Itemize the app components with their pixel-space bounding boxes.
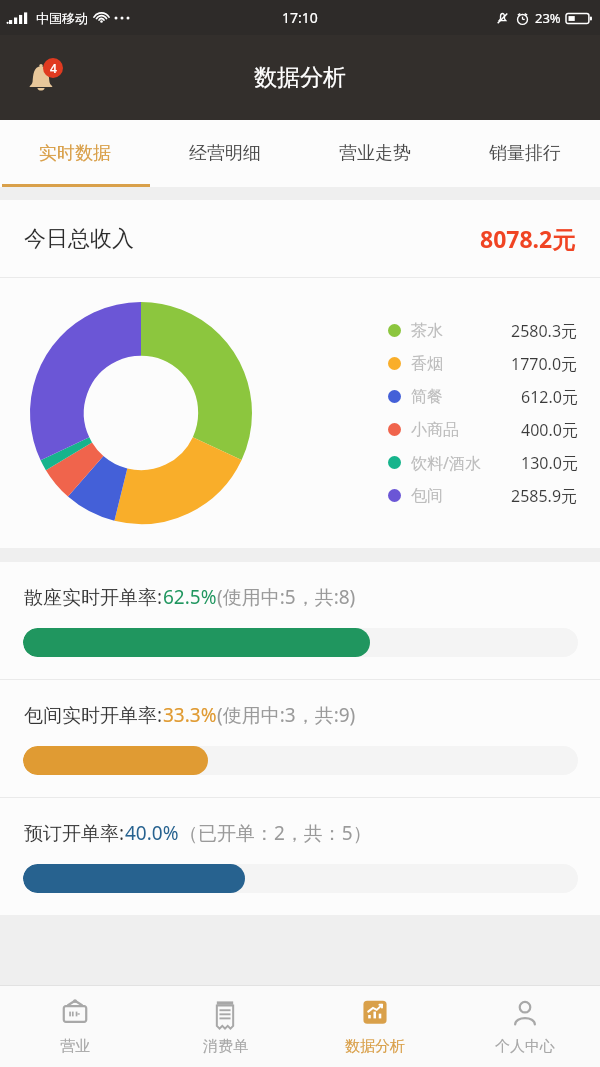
staticText: 饮料/酒水 (411, 452, 481, 474)
button[interactable]: 实时数据 (0, 120, 150, 187)
staticText: 包间实时开单率: (24, 702, 163, 728)
staticText: 40.0% (125, 820, 179, 846)
staticText: 个人中心 (495, 1037, 555, 1056)
staticText: (使用中:3，共:9) (217, 702, 356, 728)
staticText: 预订开单率: (24, 820, 125, 846)
staticText: 今日总收入 (24, 225, 134, 253)
button[interactable]: 预订开单率: (0, 798, 600, 915)
button[interactable]: 营业走势 (300, 120, 450, 187)
staticText: 小商品 (411, 420, 459, 440)
staticText: 612.0元 (521, 386, 578, 408)
staticText: 营业走势 (339, 142, 411, 165)
staticText: 4 (50, 60, 57, 76)
staticText: 130.0元 (521, 452, 578, 474)
staticText: 消费单 (203, 1037, 248, 1056)
staticText: 2585.9元 (511, 485, 578, 507)
button[interactable]: 个人中心 (450, 986, 600, 1067)
button[interactable]: 消费单 (150, 986, 300, 1067)
staticText: 数据分析 (254, 63, 346, 92)
button[interactable]: 通知 (18, 55, 64, 101)
staticText: 17:10 (282, 8, 318, 27)
button[interactable]: 营业 (0, 986, 150, 1067)
staticText: 数据分析 (345, 1037, 405, 1056)
staticText: 简餐 (411, 387, 443, 407)
staticText: 2580.3元 (511, 320, 578, 342)
staticText: 销量排行 (489, 142, 561, 165)
staticText: (使用中:5，共:8) (217, 584, 356, 610)
button[interactable]: 散座实时开单率: (0, 562, 600, 679)
button[interactable]: 经营明细 (150, 120, 300, 187)
staticText: 8078.2元 (480, 223, 576, 254)
button[interactable]: 数据分析 (300, 986, 450, 1067)
button[interactable]: 包间实时开单率: (0, 680, 600, 797)
staticText: （已开单：2，共：5） (179, 820, 372, 846)
staticText: 62.5% (163, 584, 217, 610)
staticText: 23% (535, 9, 561, 27)
staticText: 散座实时开单率: (24, 584, 163, 610)
staticText: 包间 (411, 486, 443, 506)
button[interactable]: 销量排行 (450, 120, 600, 187)
staticText: 400.0元 (521, 419, 578, 441)
staticText: 香烟 (411, 354, 443, 374)
staticText: 中国移动 (36, 10, 88, 26)
staticText: 营业 (60, 1037, 90, 1056)
staticText: 1770.0元 (511, 353, 578, 375)
staticText: 经营明细 (189, 142, 261, 165)
staticText: 实时数据 (39, 142, 111, 165)
staticText: 茶水 (411, 321, 443, 341)
staticText: 33.3% (163, 702, 217, 728)
